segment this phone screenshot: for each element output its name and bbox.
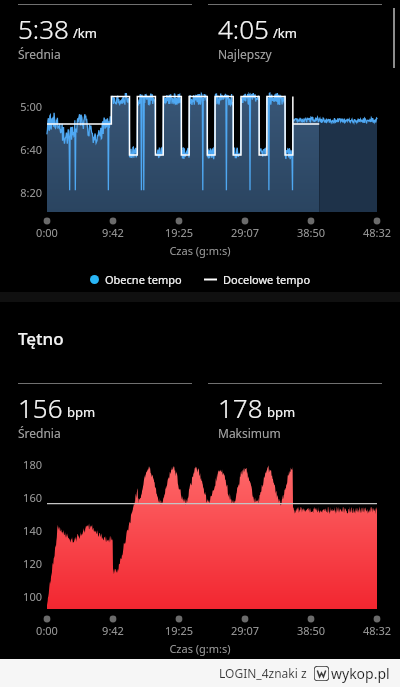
staticText: 156 <box>18 390 63 425</box>
other: Wykop logo <box>314 666 329 681</box>
staticText: 4:05 <box>218 11 269 46</box>
button[interactable]: 178 <box>218 390 400 441</box>
staticText: Średnia <box>18 425 61 441</box>
staticText: Maksimum <box>218 425 281 441</box>
staticText: Obecne tempo <box>105 272 182 287</box>
staticText: Czas (g:m:s) <box>0 641 400 656</box>
staticText: Docelowe tempo <box>223 272 311 287</box>
staticText: /km <box>73 24 97 42</box>
staticText: 5:38 <box>18 11 69 46</box>
staticText: 8:20 <box>6 185 42 200</box>
staticText: wykop.pl <box>331 664 390 683</box>
button[interactable]: 5:38 <box>18 11 200 62</box>
button[interactable]: Docelowe tempo <box>202 272 313 287</box>
staticText: 48:32 <box>352 225 400 240</box>
staticText: LOGIN_4znaki z <box>219 665 307 681</box>
staticText: 140 <box>6 523 42 538</box>
button[interactable]: 156 <box>18 390 200 441</box>
staticText: 29:07 <box>220 623 270 638</box>
staticText: 38:50 <box>286 623 336 638</box>
staticText: 9:42 <box>88 623 138 638</box>
staticText: 160 <box>6 490 42 505</box>
staticText: 29:07 <box>220 225 270 240</box>
staticText: 5:00 <box>6 99 42 114</box>
staticText: Średnia <box>18 46 61 62</box>
button[interactable] <box>0 452 400 609</box>
button[interactable]: Obecne tempo <box>88 272 184 287</box>
staticText: 48:32 <box>352 623 400 638</box>
staticText: Tętno <box>18 327 64 350</box>
staticText: Najlepszy <box>218 46 272 62</box>
staticText: 6:40 <box>6 142 42 157</box>
staticText: 38:50 <box>286 225 336 240</box>
staticText: 178 <box>218 390 263 425</box>
staticText: Czas (g:m:s) <box>0 243 400 258</box>
staticText: 100 <box>6 589 42 604</box>
staticText: 0:00 <box>22 623 72 638</box>
staticText: 19:25 <box>154 225 204 240</box>
staticText: /km <box>273 24 297 42</box>
staticText: 19:25 <box>154 623 204 638</box>
staticText: 120 <box>6 556 42 571</box>
staticText: bpm <box>67 403 96 421</box>
staticText: 180 <box>6 457 42 472</box>
button[interactable] <box>0 62 400 212</box>
staticText: 0:00 <box>22 225 72 240</box>
button[interactable]: 4:05 <box>218 11 400 62</box>
staticText: bpm <box>267 403 296 421</box>
staticText: 9:42 <box>88 225 138 240</box>
